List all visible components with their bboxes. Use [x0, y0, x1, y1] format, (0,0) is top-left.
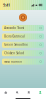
button[interactable]: Home: [0, 88, 11, 97]
button[interactable]: Saved: [23, 88, 34, 97]
staticText: Green Smoothie: [4, 43, 28, 46]
button[interactable]: Profile: [34, 88, 46, 97]
staticText: Miso Ramen: [4, 60, 22, 63]
staticText: 9:41: [3, 2, 10, 8]
staticText: Chicken Salad: [4, 51, 24, 55]
button[interactable]: Chicken Salad: [2, 50, 44, 56]
button[interactable]: Avocado Toast: [2, 25, 44, 31]
staticText: Avocado Toast: [4, 26, 24, 30]
staticText: Berry Oatmeal: [4, 35, 25, 38]
button[interactable]: Search: [11, 88, 23, 97]
button[interactable]: Green Smoothie: [2, 42, 44, 48]
button[interactable]: Berry Oatmeal: [2, 33, 44, 39]
button[interactable]: Miso Ramen: [2, 59, 44, 65]
